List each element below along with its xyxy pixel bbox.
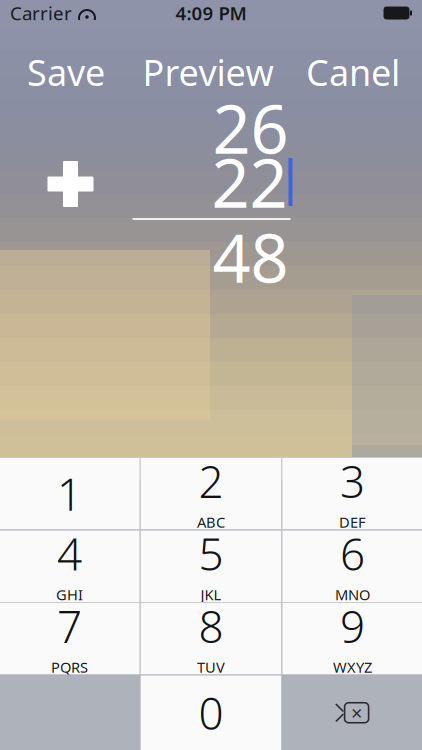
staticText: 1: [57, 464, 82, 523]
staticText: 8: [198, 597, 223, 655]
staticText: Preview: [142, 48, 273, 96]
button[interactable]: Canel: [284, 48, 422, 96]
staticText: WXYZ: [333, 657, 372, 677]
button[interactable]: 0: [141, 675, 281, 750]
button[interactable]: 9: [282, 603, 422, 674]
button[interactable]: Delete: [282, 675, 422, 750]
staticText: 2: [198, 452, 223, 510]
button[interactable]: 8: [141, 603, 281, 674]
button[interactable]: 4: [0, 530, 140, 602]
staticText: PQRS: [51, 657, 88, 677]
staticText: 5: [198, 524, 223, 583]
button[interactable]: 2: [141, 458, 281, 529]
staticText: 22: [211, 138, 287, 226]
staticText: TUV: [197, 657, 225, 677]
button[interactable]: 1: [0, 458, 140, 529]
staticText: 7: [57, 597, 82, 655]
staticText: 48: [212, 213, 288, 301]
button[interactable]: Save: [0, 48, 132, 96]
staticText: 4: [57, 524, 82, 583]
staticText: JKL: [200, 585, 221, 604]
staticText: GHI: [56, 585, 83, 604]
button[interactable]: 5: [141, 530, 281, 602]
button[interactable]: 7: [0, 603, 140, 674]
staticText: Save: [27, 48, 105, 96]
staticText: 26: [212, 84, 288, 172]
staticText: 6: [340, 524, 365, 583]
staticText: 0: [198, 683, 223, 742]
staticText: 3: [340, 452, 365, 510]
staticText: Carrier: [10, 1, 72, 25]
staticText: ×: [351, 699, 362, 726]
staticText: ABC: [197, 512, 225, 532]
button[interactable]: 3: [282, 458, 422, 529]
staticText: MNO: [335, 585, 370, 604]
staticText: 4:09 PM: [175, 1, 246, 25]
staticText: 9: [340, 597, 365, 655]
staticText: Canel: [306, 48, 400, 96]
button[interactable]: Preview: [132, 48, 284, 96]
button[interactable]: 6: [282, 530, 422, 602]
staticText: DEF: [339, 512, 366, 532]
